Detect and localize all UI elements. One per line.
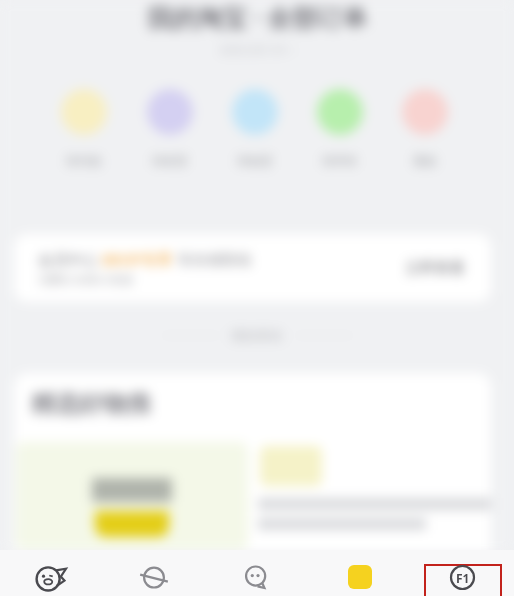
- staticText: 猜你喜欢: [221, 326, 294, 344]
- button[interactable]: 待发货: [127, 89, 212, 168]
- button[interactable]: [16, 442, 248, 550]
- button[interactable]: 退款: [382, 89, 467, 168]
- button[interactable]: 待付款: [41, 89, 127, 168]
- staticText: 待发货: [152, 153, 188, 168]
- staticText: 待收货: [237, 153, 273, 168]
- button[interactable]: Cart: [308, 550, 411, 596]
- staticText: 待评价: [322, 153, 358, 168]
- staticText: 等你领取啦: [173, 249, 252, 269]
- staticText: 会员中心: [38, 249, 102, 269]
- button[interactable]: Mine: [411, 550, 514, 596]
- staticText: 退款: [413, 153, 437, 168]
- button[interactable]: 待收货: [212, 89, 297, 168]
- button[interactable]: Discover: [102, 550, 205, 596]
- button[interactable]: Home: [0, 550, 102, 596]
- staticText: 消费红包每日更新: [38, 272, 134, 287]
- button[interactable]: 待评价: [297, 89, 382, 168]
- staticText: F1: [456, 570, 470, 586]
- button[interactable]: Messages: [205, 550, 308, 596]
- staticText: 精选好物推: [31, 389, 151, 419]
- staticText: 我的淘宝 · 全部订单: [0, 0, 514, 34]
- staticText: 88VIP专享: [102, 249, 173, 269]
- button[interactable]: 会员中心: [14, 234, 491, 302]
- staticText: 立即查看: [405, 259, 465, 278]
